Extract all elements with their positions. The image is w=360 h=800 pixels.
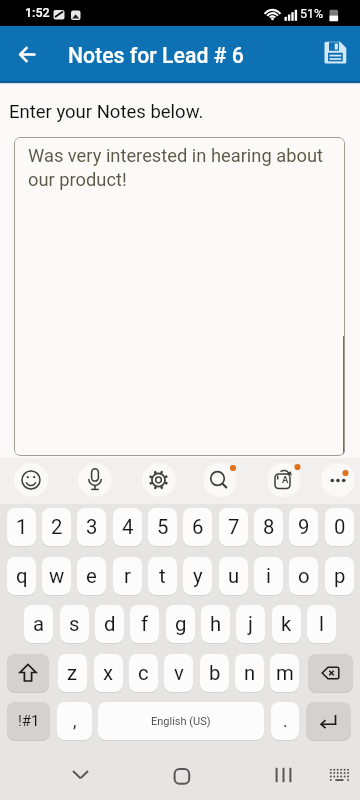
button[interactable]: b (200, 654, 229, 692)
staticText: w (49, 564, 65, 588)
button[interactable]: c (129, 654, 158, 692)
staticText: z (67, 661, 78, 685)
button[interactable]: 7 (219, 508, 248, 546)
staticText: n (244, 661, 256, 685)
button[interactable]: z (58, 654, 87, 692)
button[interactable]: r (113, 557, 142, 595)
button[interactable] (142, 463, 176, 497)
button[interactable] (161, 758, 203, 794)
staticText: b (209, 661, 221, 685)
button[interactable] (7, 654, 49, 692)
staticText: 0 (334, 515, 346, 539)
button[interactable] (10, 38, 46, 74)
staticText: p (334, 564, 346, 588)
button[interactable]: . (271, 702, 299, 740)
staticText: Notes for Lead # 6 (68, 43, 244, 68)
button[interactable]: m (270, 654, 299, 692)
staticText: y (193, 564, 203, 588)
button[interactable]: j (236, 605, 265, 643)
staticText: i (266, 564, 271, 588)
button[interactable]: n (235, 654, 264, 692)
button[interactable] (262, 758, 304, 794)
staticText: h (210, 612, 222, 636)
button[interactable]: g (166, 605, 195, 643)
button[interactable]: u (219, 557, 248, 595)
staticText: d (104, 612, 116, 636)
button[interactable]: v (164, 654, 193, 692)
button[interactable]: d (95, 605, 124, 643)
staticText: 4 (122, 515, 134, 539)
staticText: q (16, 564, 28, 588)
button[interactable]: t (148, 557, 177, 595)
button[interactable]: Was very interested in hearing about our… (14, 137, 345, 456)
staticText: 2 (51, 515, 63, 539)
staticText: k (281, 612, 292, 636)
staticText: m (276, 661, 294, 685)
button[interactable]: l (307, 605, 336, 643)
staticText: , (73, 711, 77, 732)
button[interactable]: 8 (254, 508, 283, 546)
staticText: f (141, 612, 149, 636)
button[interactable]: 0 (325, 508, 354, 546)
button[interactable] (308, 654, 353, 692)
button[interactable]: q (7, 557, 36, 595)
staticText: t (159, 564, 166, 588)
button[interactable]: k (272, 605, 301, 643)
button[interactable]: w (42, 557, 71, 595)
button[interactable]: 4 (113, 508, 142, 546)
button[interactable] (60, 758, 102, 794)
staticText: e (86, 564, 97, 588)
button[interactable]: 9 (289, 508, 318, 546)
staticText: o (298, 564, 310, 588)
staticText: . (283, 711, 288, 732)
button[interactable]: !#1 (7, 702, 50, 740)
staticText: j (248, 612, 253, 636)
button[interactable]: 6 (183, 508, 212, 546)
button[interactable] (14, 463, 48, 497)
staticText: x (103, 661, 114, 685)
staticText: 1:52 (25, 5, 50, 20)
staticText: u (228, 564, 240, 588)
staticText: a (33, 612, 45, 636)
staticText: Was very interested in hearing about our… (28, 145, 336, 190)
button[interactable] (267, 463, 301, 497)
staticText: r (124, 564, 131, 588)
button[interactable] (203, 463, 237, 497)
button[interactable]: s (60, 605, 89, 643)
button[interactable] (321, 463, 355, 497)
staticText: 51% (300, 6, 324, 21)
button[interactable] (306, 702, 351, 740)
staticText: !#1 (18, 712, 40, 730)
staticText: English (US) (151, 715, 211, 728)
button[interactable]: 2 (42, 508, 71, 546)
button[interactable]: , (57, 702, 92, 740)
staticText: 5 (157, 515, 169, 539)
staticText: Enter your Notes below. (9, 101, 204, 123)
staticText: 6 (192, 515, 204, 539)
staticText: s (69, 612, 80, 636)
button[interactable]: h (201, 605, 230, 643)
button[interactable] (78, 463, 112, 497)
button[interactable]: p (325, 557, 354, 595)
staticText: l (319, 612, 324, 636)
button[interactable] (318, 758, 360, 794)
button[interactable]: i (254, 557, 283, 595)
staticText: g (175, 612, 187, 636)
staticText: 7 (228, 515, 240, 539)
staticText: v (174, 661, 184, 685)
button[interactable]: x (94, 654, 123, 692)
button[interactable]: y (183, 557, 212, 595)
staticText: c (138, 661, 149, 685)
staticText: 1 (16, 515, 28, 539)
button[interactable]: e (77, 557, 106, 595)
button[interactable] (317, 32, 360, 75)
button[interactable]: a (24, 605, 53, 643)
button[interactable]: 3 (77, 508, 106, 546)
button[interactable]: English (US) (98, 702, 264, 740)
button[interactable]: f (130, 605, 159, 643)
button[interactable]: o (289, 557, 318, 595)
button[interactable]: 1 (7, 508, 36, 546)
staticText: 8 (263, 515, 275, 539)
staticText: 9 (298, 515, 310, 539)
button[interactable]: 5 (148, 508, 177, 546)
